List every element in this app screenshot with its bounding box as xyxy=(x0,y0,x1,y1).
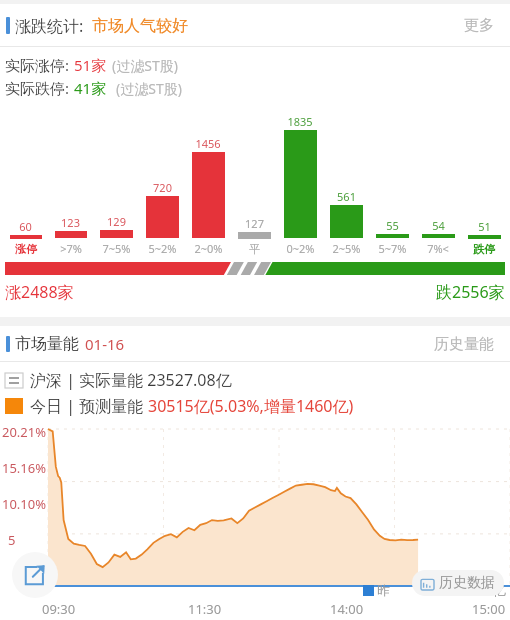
staticText: 01-16 xyxy=(85,334,125,354)
staticText: 2~0% xyxy=(194,241,223,256)
staticText: 5~2% xyxy=(148,241,177,256)
staticText: 沪深 | 实际量能 23527.08亿 xyxy=(30,369,232,391)
staticText: 今日 | 预测量能 xyxy=(30,395,148,417)
staticText: 市场人气较好 xyxy=(92,16,188,36)
staticText: 561 xyxy=(337,189,356,204)
staticText: 1835 xyxy=(287,114,313,129)
staticText: 0~2% xyxy=(286,241,315,256)
staticText: 实际涨停: xyxy=(5,55,70,75)
staticText: 20.21% xyxy=(2,423,47,441)
button[interactable]: 更多 xyxy=(462,10,496,41)
button[interactable]: 历史数据 xyxy=(412,570,504,596)
staticText: 历史数据 xyxy=(439,574,495,592)
staticText: 跌2556家 xyxy=(436,281,505,303)
staticText: 54 xyxy=(432,218,445,233)
staticText: >7% xyxy=(60,241,82,256)
staticText: 历史量能 xyxy=(434,335,494,354)
staticText: (过滤ST股) xyxy=(116,79,182,98)
staticText: 涨跌统计: xyxy=(15,15,84,37)
staticText: 51 xyxy=(478,219,491,234)
staticText: 5~7% xyxy=(378,241,407,256)
staticText: 11:30 xyxy=(188,600,222,618)
staticText: 51家 xyxy=(74,55,107,75)
staticText: 09:30 xyxy=(42,600,76,618)
staticText: 跌停 xyxy=(473,242,495,256)
staticText: 55 xyxy=(386,218,399,233)
staticText: 127 xyxy=(245,216,264,231)
staticText: 14:00 xyxy=(330,600,364,618)
staticText: 昨 xyxy=(377,582,390,598)
staticText: 7~5% xyxy=(102,241,131,256)
staticText: 更多 xyxy=(464,16,494,35)
staticText: 41家 xyxy=(74,78,107,98)
staticText: (过滤ST股) xyxy=(112,56,178,75)
staticText: 15.16% xyxy=(2,459,47,477)
staticText: 129 xyxy=(107,214,126,229)
staticText: 5 xyxy=(8,531,16,549)
button[interactable]: Share xyxy=(12,552,58,598)
button[interactable]: 历史量能 xyxy=(432,329,496,360)
staticText: 10.10% xyxy=(2,495,47,513)
staticText: 720 xyxy=(153,180,172,195)
staticText: 30515亿(5.03%,增量1460亿) xyxy=(148,395,354,417)
staticText: 15:00 xyxy=(472,600,506,618)
staticText: 涨2488家 xyxy=(5,281,74,303)
staticText: 涨停 xyxy=(15,242,37,256)
staticText: 平 xyxy=(249,242,260,256)
staticText: 60 xyxy=(19,219,32,234)
staticText: 市场量能 xyxy=(15,334,79,354)
staticText: 1456 xyxy=(195,136,221,151)
staticText: 亿 xyxy=(493,582,506,598)
staticText: 7%< xyxy=(427,241,449,256)
staticText: 实际跌停: xyxy=(5,78,70,98)
staticText: 123 xyxy=(61,215,80,230)
staticText: 2~5% xyxy=(332,241,361,256)
